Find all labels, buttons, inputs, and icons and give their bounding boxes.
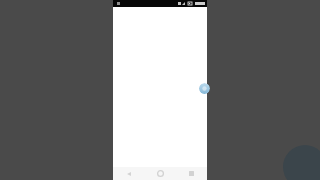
button[interactable]: Floating assistant bubble	[199, 83, 210, 94]
button[interactable]: Home	[145, 167, 176, 180]
button[interactable]: Back	[113, 167, 145, 180]
button[interactable]: Recent apps	[176, 167, 207, 180]
